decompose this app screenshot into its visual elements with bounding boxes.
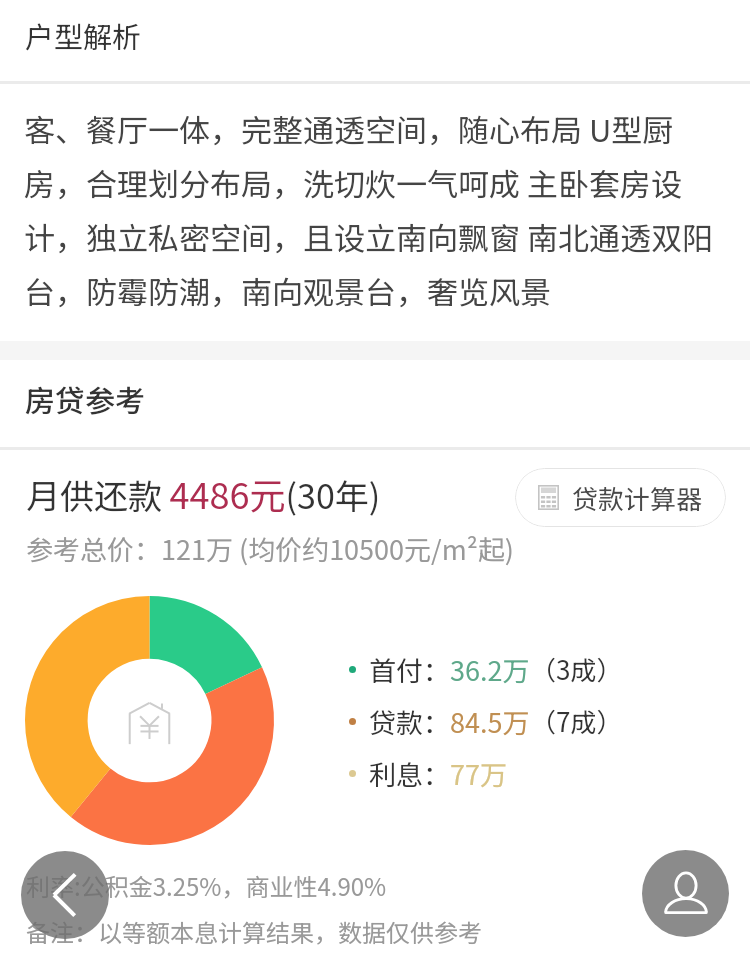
staticText: 房贷参考: [25, 377, 145, 420]
staticText: 利率:公积金3.25%，商业性4.90%: [26, 868, 387, 903]
staticText: 参考总价：121万 (均价约10500元/m²起): [26, 529, 514, 568]
staticText: 36.2万: [450, 650, 530, 689]
button[interactable]: Profile: [642, 850, 729, 937]
staticText: 贷款：: [369, 702, 450, 741]
staticText: 77万: [450, 754, 507, 793]
staticText: （3成）: [530, 650, 623, 688]
button[interactable]: 贷款计算器: [515, 468, 726, 527]
staticText: 利息：: [369, 754, 450, 793]
staticText: 月供还款 4486元(30年): [26, 467, 381, 519]
staticText: 首付：: [369, 650, 450, 689]
button[interactable]: 户型解析: [0, 0, 750, 81]
staticText: 备注：以等额本息计算结果，数据仅供参考: [26, 914, 482, 949]
button[interactable]: Back: [21, 851, 109, 939]
staticText: 贷款计算器: [572, 479, 703, 517]
staticText: （7成）: [530, 702, 623, 740]
button[interactable]: 房贷参考: [0, 360, 750, 447]
staticText: 客、餐厅一体，完整通透空间，随心布局 U型厨房，合理划分布局，洗切炊一气呵成 主…: [24, 106, 722, 313]
staticText: 84.5万: [450, 702, 530, 741]
staticText: 户型解析: [25, 14, 142, 56]
